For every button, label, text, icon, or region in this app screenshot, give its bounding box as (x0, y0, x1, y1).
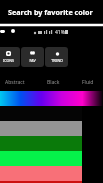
button[interactable]: Fluid (82, 79, 94, 86)
button[interactable]: ICONS (0, 47, 20, 67)
staticText: 41% (55, 29, 65, 36)
staticText: Search by favorite color (8, 7, 93, 17)
staticText: TREND (51, 58, 63, 63)
button[interactable]: Black (47, 79, 60, 86)
staticText: Abstract (5, 79, 25, 86)
button[interactable] (0, 121, 103, 136)
button[interactable]: TREND (45, 47, 68, 67)
staticText: Fluid (82, 79, 94, 86)
button[interactable]: FAV (21, 47, 44, 67)
staticText: FAV (29, 58, 36, 63)
button[interactable] (0, 136, 103, 151)
staticText: ICONS (3, 58, 14, 63)
button[interactable] (0, 151, 103, 166)
staticText: Black (47, 79, 60, 86)
button[interactable] (0, 181, 103, 183)
button[interactable]: Abstract (5, 79, 25, 86)
button[interactable] (0, 166, 103, 181)
